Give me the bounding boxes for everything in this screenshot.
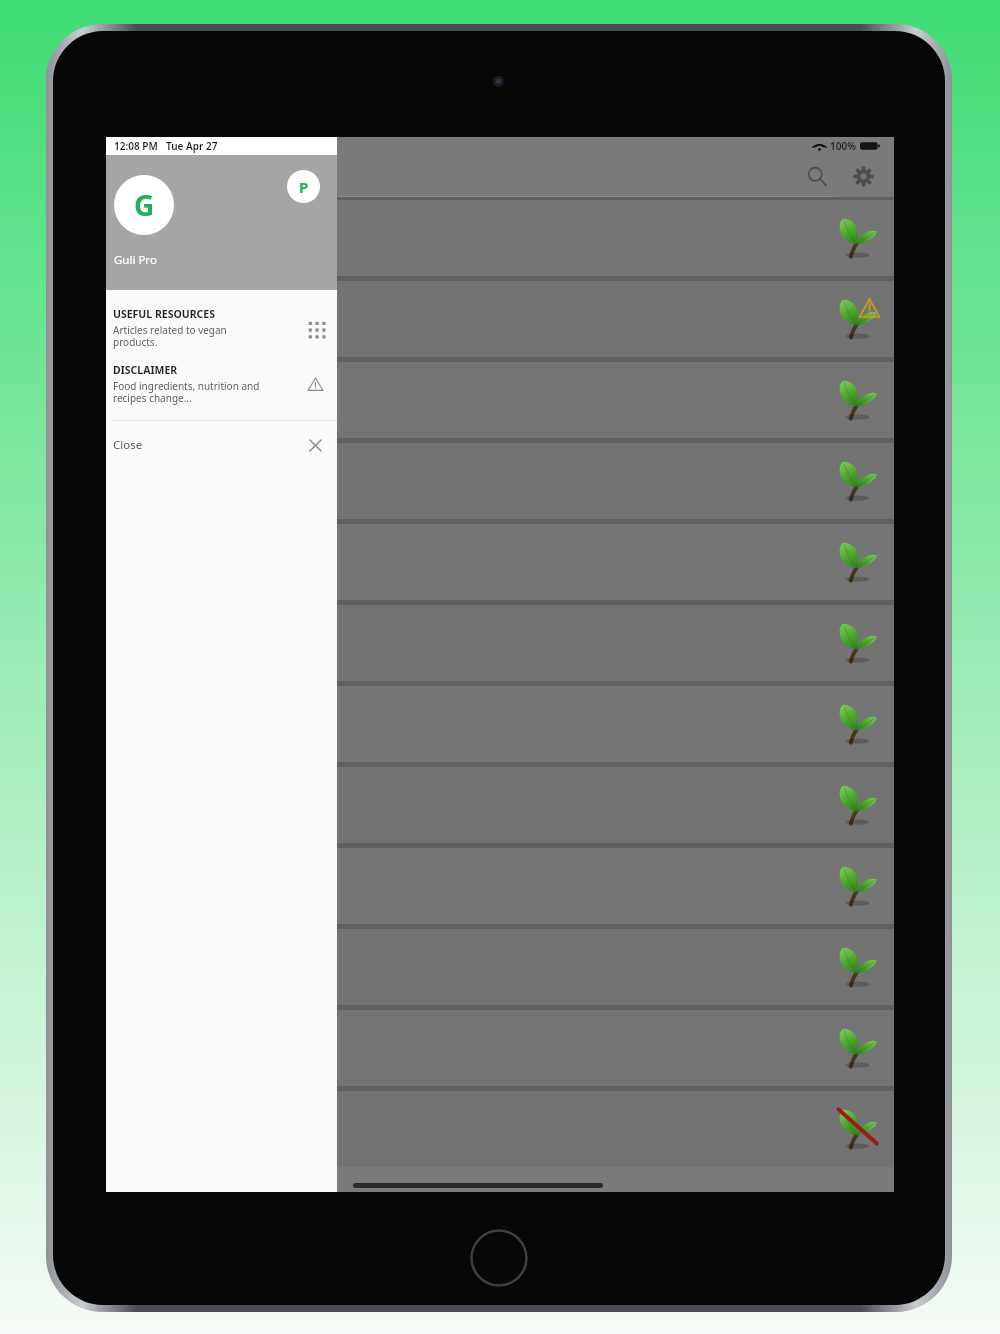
button[interactable]: Search [794,155,840,197]
staticText: G [134,186,155,224]
button[interactable] [106,1091,894,1167]
staticText: P [299,177,309,197]
staticText: Food ingredients, nutrition and recipes … [113,379,260,405]
button[interactable] [106,362,894,438]
button[interactable] [106,929,894,1005]
button[interactable]: DISCLAIMER [106,356,337,412]
staticText: USEFUL RESOURCES [113,307,215,321]
staticText: Tue Apr 27 [166,139,218,153]
button[interactable] [106,281,894,357]
staticText: Close [113,437,143,453]
button[interactable] [106,848,894,924]
other: Home [470,1229,528,1287]
staticText: 100% [830,139,856,153]
button[interactable]: Pro account [287,170,320,203]
button[interactable] [106,443,894,519]
staticText: DISCLAIMER [113,363,178,377]
staticText: 12:08 PM [114,139,158,153]
staticText: Articles related to vegan products. [113,323,227,349]
button[interactable]: Close [106,421,337,469]
button[interactable] [106,1010,894,1086]
button[interactable] [106,686,894,762]
button[interactable] [106,605,894,681]
staticText: Guli Pro [114,252,157,268]
button[interactable]: Settings [840,155,886,197]
button[interactable]: USEFUL RESOURCES [106,300,337,356]
button[interactable]: G [114,175,174,235]
button[interactable] [106,200,894,276]
button[interactable] [106,524,894,600]
button[interactable] [106,767,894,843]
